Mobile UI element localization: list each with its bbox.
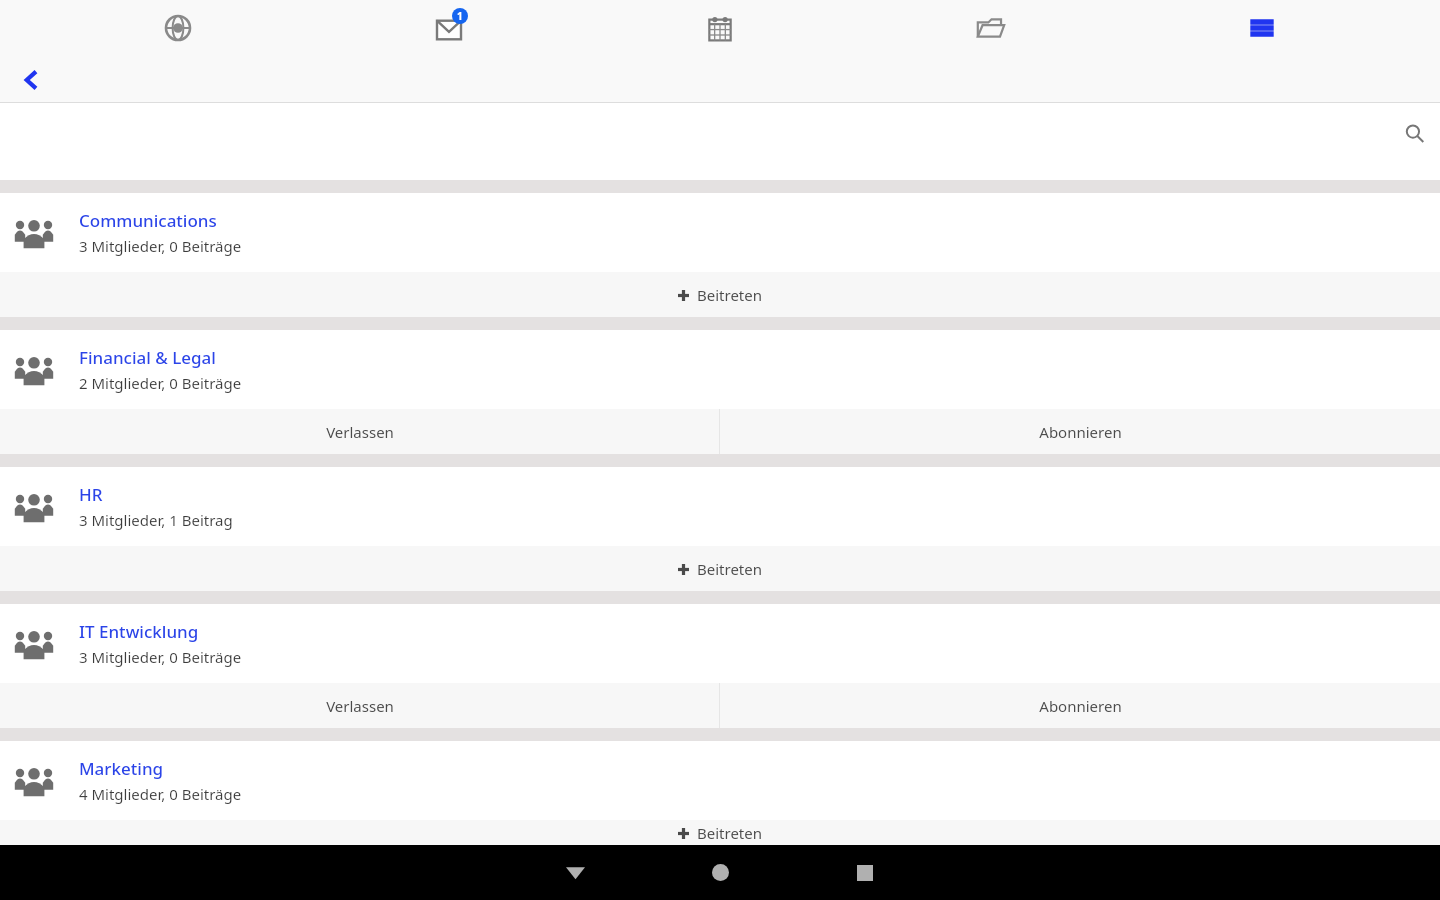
button[interactable]: Marketing [0,741,1440,820]
staticText: 3 Mitglieder, 1 Beitrag [79,510,233,530]
staticText: Abonnieren [1039,696,1122,716]
staticText: Financial & Legal [79,346,216,369]
button[interactable]: Communications [0,193,1440,272]
button[interactable]: Beitreten [0,272,1440,317]
staticText: 4 Mitglieder, 0 Beiträge [79,784,242,804]
button[interactable]: Dateien [963,0,1019,56]
button[interactable]: Beitreten [0,546,1440,591]
staticText: Abonnieren [1039,422,1122,442]
button[interactable]: Verlassen [0,683,719,728]
button[interactable]: Startbildschirm [685,845,755,900]
staticText: 1 [457,9,463,23]
button[interactable]: Abonnieren [720,409,1440,454]
button[interactable]: Abonnieren [720,683,1440,728]
button[interactable]: HR [0,467,1440,546]
staticText: HR [79,483,103,506]
button[interactable]: Mail, 1 neue Nachricht [421,0,477,56]
staticText: Beitreten [697,823,762,843]
staticText: 3 Mitglieder, 0 Beiträge [79,647,242,667]
staticText: Beitreten [697,559,762,579]
button[interactable]: Kalender [692,0,748,56]
staticText: Communications [79,209,217,232]
button[interactable]: IT Entwicklung [0,604,1440,683]
button[interactable]: Financial & Legal [0,330,1440,409]
staticText: Verlassen [326,696,394,716]
staticText: IT Entwicklung [79,620,199,643]
button[interactable]: Menü [1234,0,1290,56]
button[interactable]: Verlassen [0,409,719,454]
button[interactable]: Übersicht [830,845,900,900]
staticText: Marketing [79,757,164,780]
staticText: 3 Mitglieder, 0 Beiträge [79,236,242,256]
button[interactable]: Suchen [1394,113,1434,153]
staticText: 2 Mitglieder, 0 Beiträge [79,373,242,393]
staticText: Beitreten [697,285,762,305]
staticText: Verlassen [326,422,394,442]
button[interactable]: Zurück [8,56,56,103]
button[interactable]: Zurück [540,845,610,900]
button[interactable]: Web [150,0,206,56]
button[interactable]: Beitreten [0,820,1440,845]
